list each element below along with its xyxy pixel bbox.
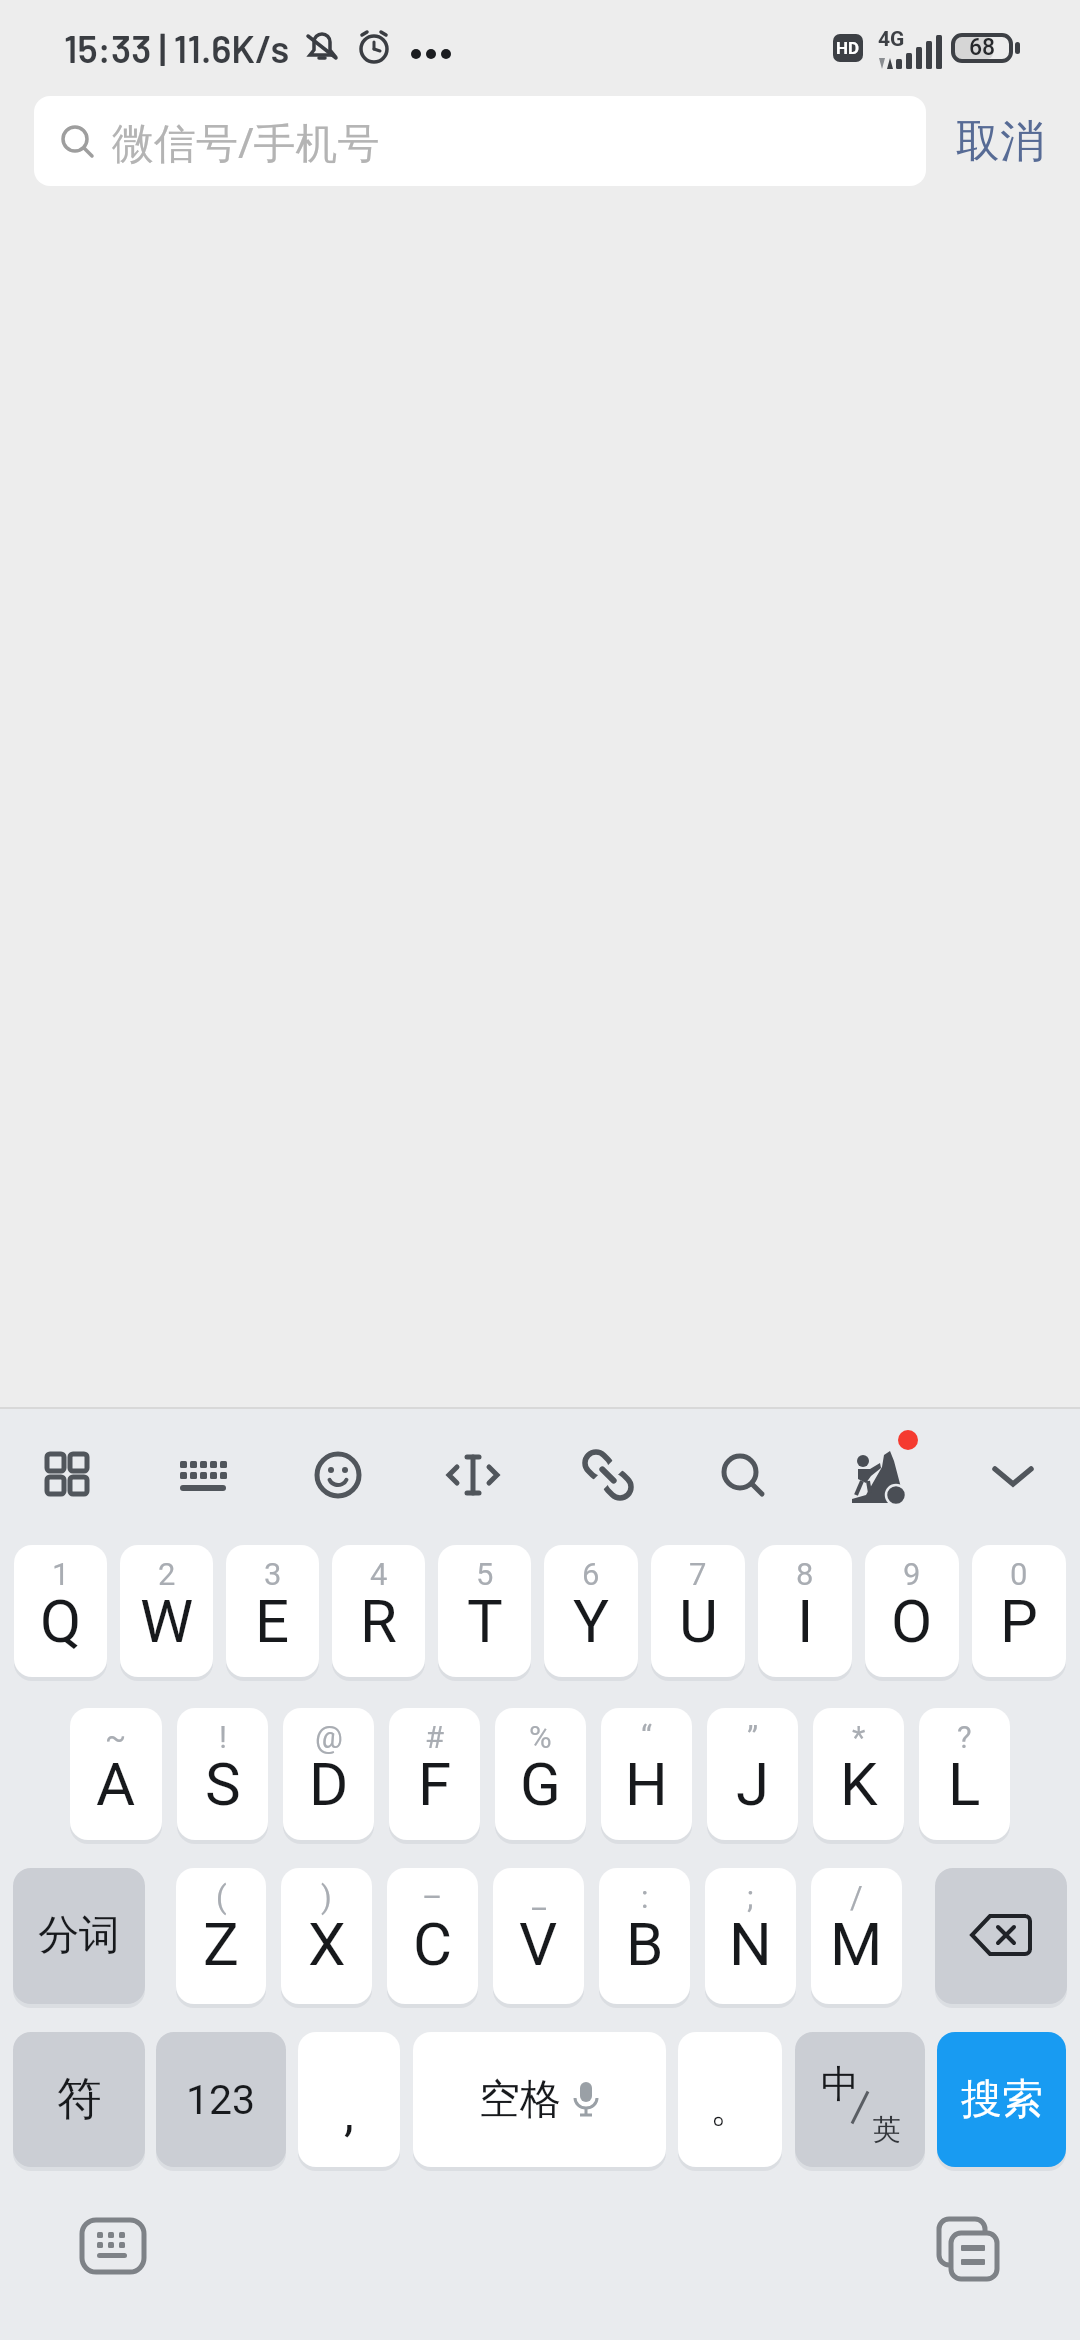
staticText: Z	[203, 1909, 239, 1979]
staticText: I	[797, 1586, 814, 1656]
button[interactable]	[0, 1409, 135, 1541]
staticText: O	[891, 1586, 933, 1656]
staticText: 英	[873, 2112, 901, 2147]
button[interactable]	[270, 1409, 405, 1541]
button[interactable]	[80, 2217, 146, 2275]
button[interactable]: ,	[298, 2032, 400, 2167]
staticText: 123	[186, 2076, 256, 2124]
button[interactable]	[945, 1409, 1080, 1541]
staticText: /	[850, 1879, 863, 1915]
staticText: *	[852, 1719, 866, 1755]
button[interactable]: %	[495, 1708, 586, 1840]
staticText: D	[309, 1749, 349, 1819]
button[interactable]: #	[389, 1708, 480, 1840]
button[interactable]: “	[601, 1708, 692, 1840]
button[interactable]: 2	[120, 1545, 213, 1677]
staticText: 5	[476, 1556, 494, 1592]
staticText: ~	[105, 1719, 127, 1755]
staticText: G	[520, 1749, 561, 1819]
staticText: 微信号/手机号	[112, 113, 380, 170]
button[interactable]: ;	[705, 1868, 796, 2004]
button[interactable]	[405, 1409, 540, 1541]
staticText: B	[626, 1909, 664, 1979]
button[interactable]	[540, 1409, 675, 1541]
staticText: Y	[573, 1586, 610, 1656]
button[interactable]: 微信号/手机号	[34, 96, 926, 186]
button[interactable]	[810, 1409, 945, 1541]
button[interactable]: 123	[156, 2032, 286, 2167]
button[interactable]: 符	[13, 2032, 145, 2167]
staticText: 6	[582, 1556, 600, 1592]
button[interactable]: @	[283, 1708, 374, 1840]
staticText: V	[519, 1909, 558, 1979]
staticText: 15:33 | 11.6K/s	[64, 25, 290, 71]
button[interactable]	[135, 1409, 270, 1541]
staticText: _	[532, 1879, 546, 1915]
staticText: 搜索	[961, 2074, 1043, 2126]
button[interactable]	[675, 1409, 810, 1541]
staticText: E	[255, 1586, 290, 1656]
staticText: 0	[1010, 1556, 1028, 1592]
button[interactable]: ”	[707, 1708, 798, 1840]
button[interactable]: 0	[972, 1545, 1066, 1677]
staticText: 4	[370, 1556, 388, 1592]
staticText: A	[96, 1749, 136, 1819]
button[interactable]: )	[281, 1868, 372, 2004]
staticText: X	[308, 1909, 346, 1979]
button[interactable]: 1	[14, 1545, 107, 1677]
button[interactable]: !	[177, 1708, 268, 1840]
button[interactable]	[935, 1868, 1067, 2004]
staticText: H	[625, 1749, 668, 1819]
staticText: %	[529, 1719, 552, 1755]
staticText: S	[205, 1749, 241, 1819]
staticText: @	[315, 1719, 343, 1755]
button[interactable]: –	[387, 1868, 478, 2004]
button[interactable]: 3	[226, 1545, 319, 1677]
staticText: )	[321, 1879, 332, 1915]
button[interactable]: 。	[678, 2032, 782, 2167]
staticText: 68	[969, 34, 996, 61]
staticText: 7	[689, 1556, 707, 1592]
button[interactable]: 7	[651, 1545, 745, 1677]
button[interactable]: 中	[795, 2032, 925, 2167]
staticText: 2	[158, 1556, 176, 1592]
button[interactable]: (	[176, 1868, 266, 2004]
button[interactable]: *	[813, 1708, 904, 1840]
staticText: N	[729, 1909, 772, 1979]
staticText: (	[216, 1879, 227, 1915]
staticText: W	[140, 1586, 194, 1656]
button[interactable]: 8	[758, 1545, 852, 1677]
button[interactable]	[934, 2217, 1000, 2275]
button[interactable]: ~	[70, 1708, 162, 1840]
button[interactable]: /	[811, 1868, 902, 2004]
button[interactable]: _	[493, 1868, 584, 2004]
staticText: 分词	[38, 1910, 120, 1962]
button[interactable]: 9	[865, 1545, 959, 1677]
button[interactable]: 4	[332, 1545, 425, 1677]
button[interactable]: 空格	[413, 2032, 666, 2167]
staticText: M	[830, 1909, 883, 1979]
staticText: ?	[957, 1719, 972, 1755]
button[interactable]: ?	[919, 1708, 1010, 1840]
button[interactable]: 搜索	[937, 2032, 1066, 2167]
staticText: C	[413, 1909, 453, 1979]
staticText: 取消	[956, 114, 1044, 169]
staticText: 1	[52, 1556, 70, 1592]
staticText: Q	[40, 1586, 82, 1656]
button[interactable]: 取消	[942, 96, 1058, 186]
staticText: :	[641, 1879, 649, 1915]
staticText: ”	[747, 1719, 759, 1755]
staticText: 符	[57, 2071, 102, 2128]
button[interactable]: 分词	[13, 1868, 145, 2004]
staticText: R	[360, 1586, 397, 1656]
staticText: K	[840, 1749, 878, 1819]
button[interactable]: 5	[438, 1545, 531, 1677]
staticText: 3	[264, 1556, 282, 1592]
button[interactable]: 6	[544, 1545, 638, 1677]
staticText: 空格	[479, 2074, 561, 2126]
staticText: #	[425, 1719, 445, 1755]
staticText: 9	[903, 1556, 921, 1592]
staticText: J	[736, 1749, 770, 1819]
staticText: 中	[821, 2060, 859, 2108]
button[interactable]: :	[599, 1868, 690, 2004]
